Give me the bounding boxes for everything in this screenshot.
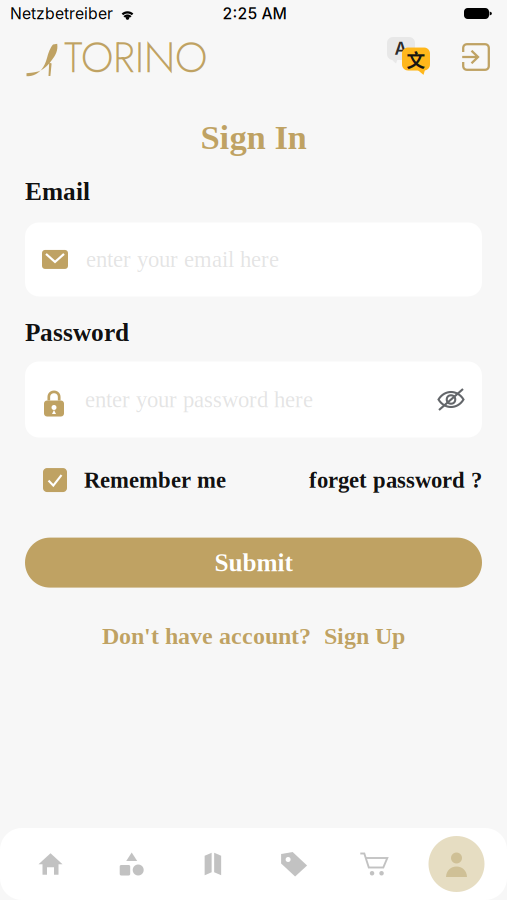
button[interactable]: Submit <box>25 538 482 588</box>
button[interactable]: Sign in <box>441 37 492 79</box>
button[interactable]: Profile <box>416 828 497 900</box>
button[interactable]: Map <box>172 828 253 900</box>
button[interactable]: Cart <box>335 828 416 900</box>
staticText: 2:25 AM <box>222 4 286 23</box>
button[interactable]: forget password ? <box>309 467 482 493</box>
button[interactable]: Home <box>10 828 91 900</box>
button[interactable]: Categories <box>91 828 172 900</box>
staticText: Password <box>25 318 129 346</box>
staticText: Remember me <box>84 467 226 493</box>
button[interactable]: Show password <box>438 388 464 410</box>
staticText: forget password ? <box>309 467 482 493</box>
button[interactable]: Sign Up <box>324 623 405 649</box>
staticText: A <box>394 38 407 59</box>
staticText: Don't have account? <box>102 623 311 649</box>
button[interactable]: Translate <box>387 37 441 79</box>
staticText: Email <box>25 177 90 205</box>
staticText: Submit <box>214 549 292 577</box>
staticText: enter your email here <box>86 247 279 272</box>
button[interactable]: Offers <box>253 828 335 900</box>
staticText: Netzbetreiber <box>10 4 113 23</box>
staticText: 文 <box>406 45 425 72</box>
staticText: Sign In <box>200 118 306 156</box>
button[interactable]: Remember me <box>25 467 226 493</box>
staticText: Sign Up <box>324 623 405 649</box>
staticText: TORINO <box>64 28 207 88</box>
staticText: enter your password here <box>85 387 313 412</box>
